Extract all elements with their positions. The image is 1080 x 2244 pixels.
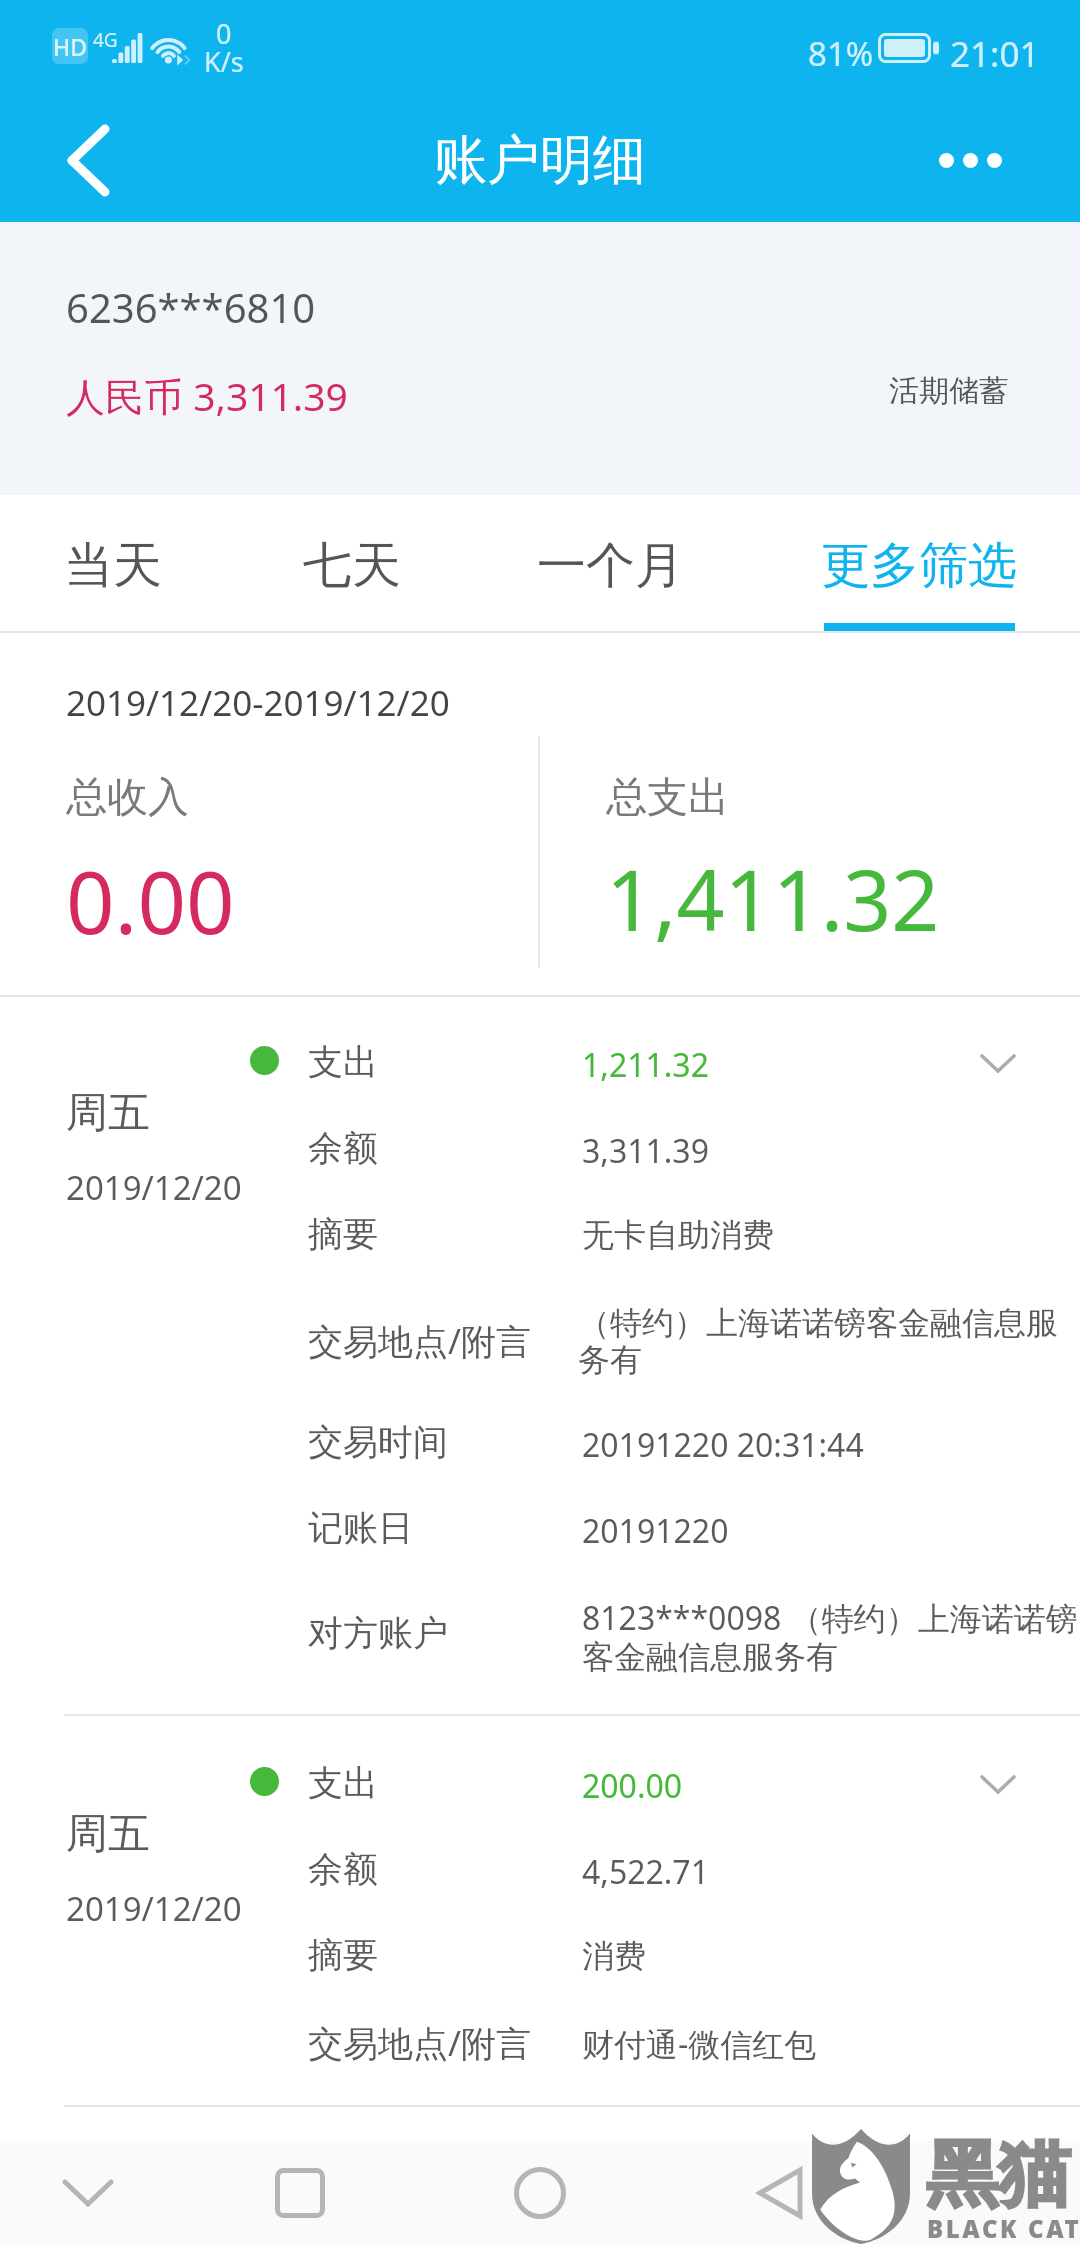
staticText: （特约）上海诺诺镑客金融信息服 务有 <box>578 1303 1058 1381</box>
button[interactable]: 更多筛选 <box>806 495 1032 633</box>
staticText: 总支出 <box>606 772 729 824</box>
button[interactable]: 七天 <box>239 495 465 633</box>
staticText: 活期储蓄 <box>889 372 1009 410</box>
button[interactable]: Recent apps <box>210 2141 390 2244</box>
staticText: 周五 <box>66 1808 150 1861</box>
button[interactable]: 周五 <box>0 1716 1080 2105</box>
staticText: 摘要 <box>308 1933 378 1977</box>
staticText: BLACK CAT <box>927 2212 1080 2244</box>
staticText: 总收入 <box>66 772 189 824</box>
staticText: 七天 <box>303 535 401 597</box>
staticText: 余额 <box>308 1126 378 1170</box>
staticText: HD <box>53 31 88 62</box>
staticText: 当天 <box>64 535 162 597</box>
staticText: 2019/12/20 <box>66 1165 242 1210</box>
staticText: 支出 <box>308 1040 378 1084</box>
staticText: 人民币 3,311.39 <box>66 369 348 422</box>
staticText: 0 <box>216 15 232 52</box>
staticText: 2019/12/20 <box>66 1886 242 1931</box>
button[interactable]: 周五 <box>0 995 1080 1714</box>
staticText: 周五 <box>66 1087 150 1140</box>
staticText: 8123***0098 （特约）上海诺诺镑 客金融信息服务有 <box>582 1596 1078 1678</box>
staticText: 1,211.32 <box>582 1043 709 1087</box>
staticText: 对方账户 <box>308 1611 448 1655</box>
staticText: K/s <box>204 43 244 80</box>
staticText: 交易时间 <box>308 1420 448 1464</box>
button[interactable]: 一个月 <box>497 495 723 633</box>
staticText: 账户明细 <box>434 127 646 194</box>
button[interactable]: Back <box>690 2141 870 2244</box>
staticText: 1,411.32 <box>606 841 940 955</box>
staticText: 81% <box>808 31 874 76</box>
staticText: 支出 <box>308 1761 378 1805</box>
staticText: 3,311.39 <box>582 1129 709 1173</box>
staticText: 4G <box>93 27 118 53</box>
staticText: 摘要 <box>308 1212 378 1256</box>
staticText: 一个月 <box>537 535 684 597</box>
staticText: 消费 <box>582 1936 646 1976</box>
staticText: 记账日 <box>308 1506 413 1550</box>
staticText: 2019/12/20-2019/12/20 <box>66 679 450 727</box>
staticText: 4,522.71 <box>582 1850 709 1894</box>
staticText: 6236***6810 <box>66 280 316 334</box>
staticText: 200.00 <box>582 1764 683 1808</box>
staticText: 余额 <box>308 1847 378 1891</box>
button[interactable]: Expand details <box>938 1735 1058 1833</box>
staticText: 交易地点/附言 <box>308 1317 532 1365</box>
staticText: 20191220 <box>582 1509 729 1553</box>
staticText: 财付通-微信红包 <box>582 2022 817 2066</box>
staticText: 0.00 <box>66 843 235 959</box>
staticText: 更多筛选 <box>821 535 1017 597</box>
button[interactable]: 当天 <box>0 495 226 633</box>
staticText: 21:01 <box>950 30 1040 78</box>
staticText: 交易地点/附言 <box>308 2019 532 2067</box>
button[interactable]: Home <box>450 2141 630 2244</box>
staticText: 20191220 20:31:44 <box>582 1423 864 1467</box>
button[interactable]: More options <box>940 104 1080 216</box>
button[interactable]: Hide keyboard <box>0 2141 176 2244</box>
button[interactable]: Expand details <box>938 1014 1058 1112</box>
staticText: 无卡自助消费 <box>582 1215 774 1255</box>
button[interactable]: Back <box>0 104 136 216</box>
staticText: 黑猫 <box>926 2130 1070 2221</box>
